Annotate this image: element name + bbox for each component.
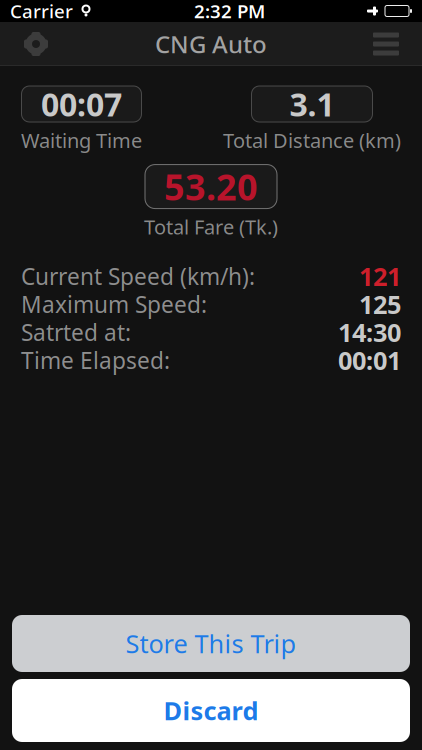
staticText: Satrted at: [21,317,131,347]
staticText: 2:32 PM [194,0,265,23]
staticText: 121 [359,259,401,293]
staticText: Store This Trip [125,627,296,660]
staticText: 125 [359,287,401,321]
staticText: Carrier [10,0,73,23]
staticText: CNG Auto [155,28,267,60]
staticText: Time Elapsed: [21,345,170,375]
staticText: 53.20 [164,163,258,210]
staticText: Current Speed (km/h): [21,261,255,291]
button[interactable]: Store This Trip [12,615,410,672]
staticText: Total Fare (Tk.) [144,214,278,240]
staticText: Maximum Speed: [21,289,207,319]
staticText: 00:01 [338,343,401,377]
staticText: Waiting Time [21,127,142,154]
button[interactable]: Menu [360,22,412,66]
button[interactable]: Settings [10,22,62,66]
staticText: Total Distance (km) [223,127,401,154]
staticText: 14:30 [338,315,401,349]
staticText: Discard [163,694,258,727]
button[interactable]: Discard [12,679,410,742]
staticText: 3.1 [289,83,334,125]
staticText: 00:07 [41,83,122,125]
